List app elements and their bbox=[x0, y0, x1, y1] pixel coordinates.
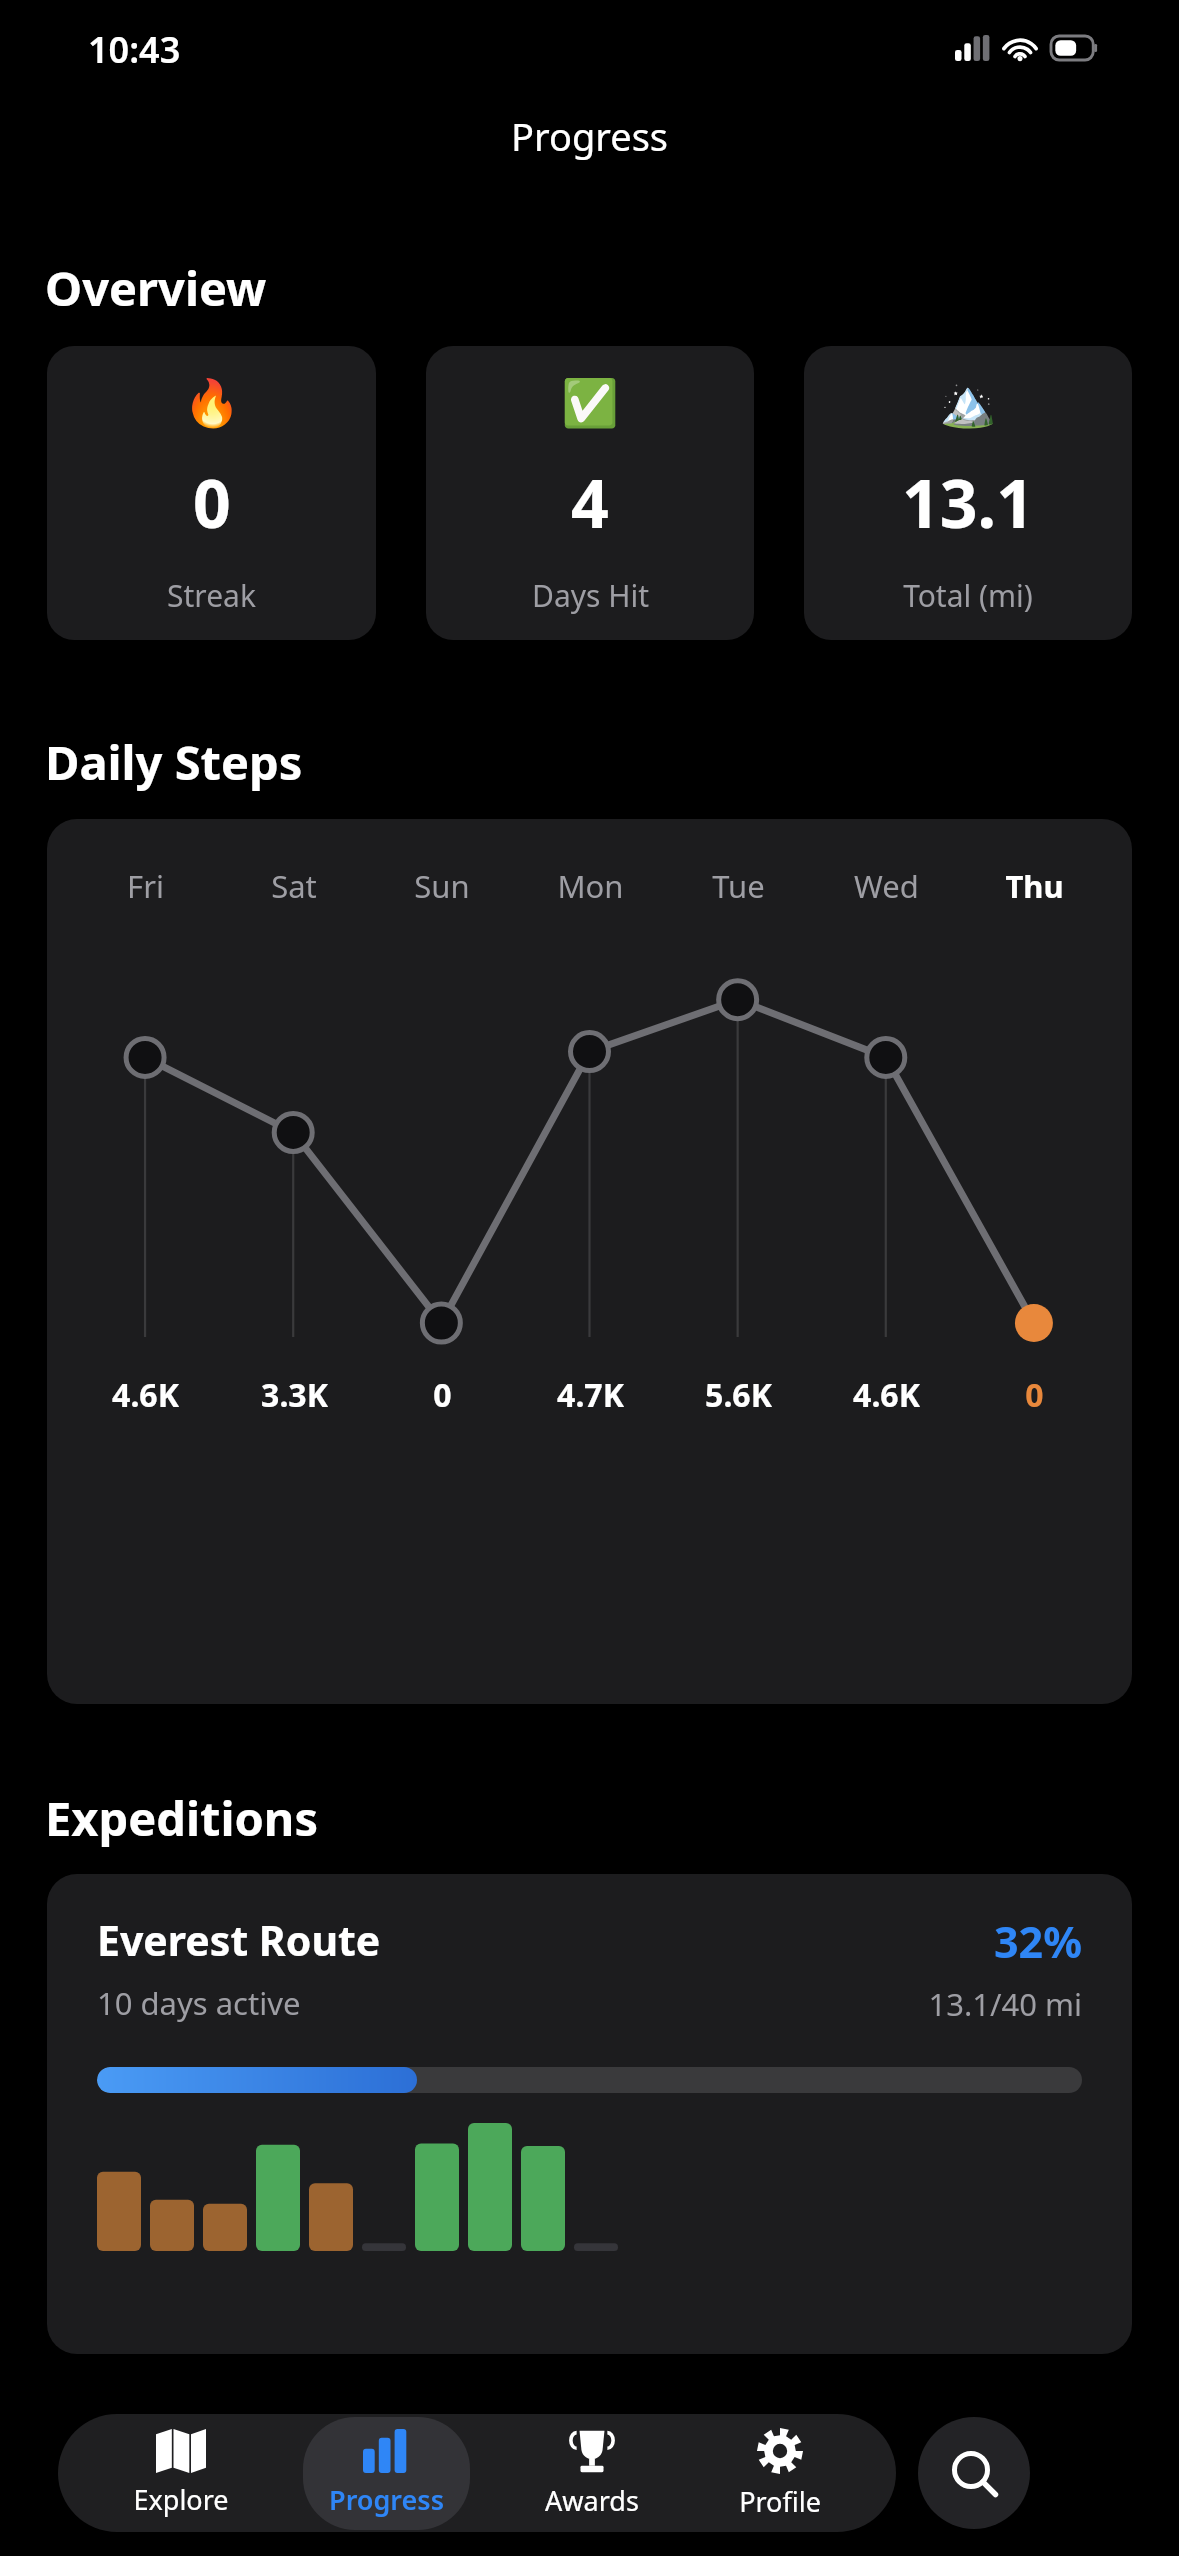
staticText: Wed bbox=[854, 865, 919, 907]
staticText: Awards bbox=[545, 2482, 639, 2519]
staticText: Sat bbox=[271, 865, 317, 907]
staticText: ✅ bbox=[561, 376, 619, 430]
button[interactable]: 🔥 bbox=[47, 346, 376, 640]
staticText: 10 days active bbox=[97, 1982, 301, 2024]
staticText: 4 bbox=[571, 457, 609, 547]
staticText: Mon bbox=[557, 865, 624, 907]
staticText: 0 bbox=[193, 457, 231, 547]
staticText: Expeditions bbox=[45, 1786, 318, 1850]
button[interactable]: Fri bbox=[47, 819, 1132, 1704]
staticText: 0 bbox=[1025, 1373, 1044, 1417]
staticText: 32% bbox=[994, 1912, 1082, 1971]
staticText: 13.1/40 mi bbox=[928, 1983, 1082, 2025]
staticText: Fri bbox=[127, 865, 164, 907]
staticText: Total (mi) bbox=[903, 575, 1033, 616]
button[interactable]: Everest Route bbox=[47, 1874, 1132, 2354]
button[interactable]: 🏔️ bbox=[804, 346, 1132, 640]
staticText: 13.1 bbox=[902, 457, 1034, 547]
staticText: 4.7K bbox=[557, 1373, 624, 1417]
staticText: Thu bbox=[1005, 865, 1064, 907]
button[interactable]: Awards bbox=[519, 2416, 665, 2531]
button[interactable]: Search bbox=[918, 2417, 1030, 2529]
staticText: Daily Steps bbox=[45, 730, 303, 794]
staticText: Days Hit bbox=[532, 575, 649, 616]
staticText: 4.6K bbox=[853, 1373, 920, 1417]
staticText: 0 bbox=[433, 1373, 452, 1417]
staticText: Overview bbox=[45, 256, 267, 320]
button[interactable]: ✅ bbox=[426, 346, 754, 640]
button[interactable]: Profile bbox=[713, 2415, 847, 2532]
staticText: 3.3K bbox=[261, 1373, 328, 1417]
staticText: Sun bbox=[414, 865, 470, 907]
staticText: Profile bbox=[739, 2483, 821, 2520]
staticText: 5.6K bbox=[705, 1373, 772, 1417]
staticText: 4.6K bbox=[112, 1373, 179, 1417]
button[interactable]: Explore bbox=[107, 2417, 255, 2530]
button[interactable]: Progress bbox=[303, 2417, 470, 2530]
staticText: Everest Route bbox=[97, 1912, 381, 1968]
staticText: Progress bbox=[511, 110, 669, 162]
staticText: Progress bbox=[329, 2481, 444, 2518]
staticText: Streak bbox=[167, 575, 256, 616]
staticText: Explore bbox=[133, 2481, 229, 2518]
staticText: Tue bbox=[712, 865, 765, 907]
staticText: 🏔️ bbox=[939, 376, 997, 430]
staticText: 🔥 bbox=[183, 376, 241, 430]
staticText: 10:43 bbox=[88, 25, 181, 74]
